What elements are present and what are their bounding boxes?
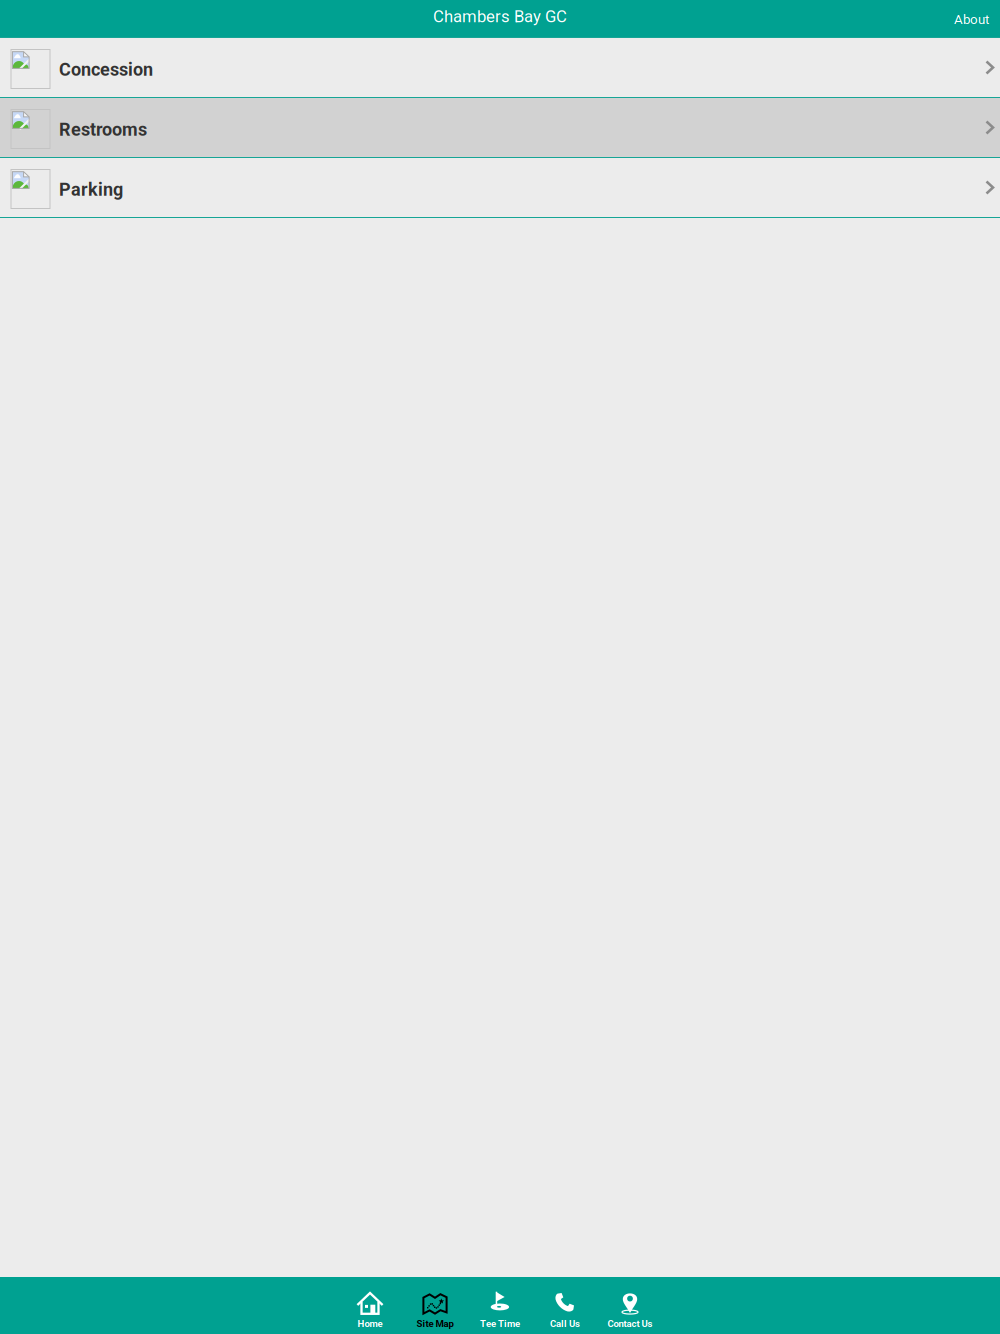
button[interactable]: Home: [337, 1277, 402, 1334]
button[interactable]: Site Map: [402, 1277, 467, 1334]
staticText: Site Map: [416, 1318, 453, 1329]
button[interactable]: Call Us: [532, 1277, 597, 1334]
staticText: Contact Us: [607, 1318, 652, 1329]
button[interactable]: Tee Time: [467, 1277, 532, 1334]
button[interactable]: About: [954, 10, 1000, 27]
button[interactable]: Parking: [0, 158, 1000, 218]
staticText: Home: [357, 1318, 382, 1329]
staticText: Parking: [59, 179, 123, 200]
staticText: Concession: [59, 59, 153, 80]
staticText: Restrooms: [59, 119, 147, 140]
staticText: Call Us: [550, 1318, 580, 1329]
button[interactable]: Contact Us: [597, 1277, 662, 1334]
staticText: Tee Time: [480, 1318, 520, 1329]
staticText: About: [954, 12, 989, 27]
staticText: Chambers Bay GC: [433, 7, 567, 26]
button[interactable]: Restrooms: [0, 98, 1000, 158]
button[interactable]: Concession: [0, 38, 1000, 98]
